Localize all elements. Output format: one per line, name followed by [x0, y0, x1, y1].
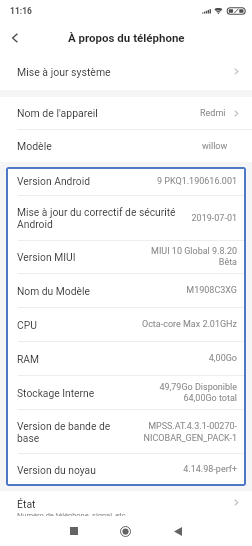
staticText: CPU [17, 319, 141, 331]
staticText: Bêta [218, 257, 237, 268]
staticText: RAM [17, 353, 208, 365]
button[interactable]: Nom de l'appareil [0, 97, 252, 129]
staticText: Version Android [17, 175, 157, 187]
staticText: Octa-core Max 2.01GHz [141, 319, 237, 330]
staticText: M1908C3XG [186, 285, 237, 296]
staticText: Version de bande de base [17, 420, 131, 444]
button[interactable]: Modèle [0, 130, 252, 162]
staticText: À propos du téléphone [68, 31, 185, 44]
button[interactable]: RAM [6, 342, 246, 375]
button[interactable]: Back [160, 516, 196, 546]
staticText: 9 PKQ1.190616.001 [157, 176, 237, 187]
staticText: Version du noyau [17, 464, 183, 476]
button[interactable]: Home [107, 516, 143, 546]
button[interactable]: État [0, 498, 252, 516]
staticText: 4,00Go [208, 353, 237, 364]
button[interactable]: Mise à jour système [0, 53, 252, 90]
button[interactable]: Version Android [6, 167, 246, 195]
staticText: Redmi [200, 108, 226, 119]
staticText: Mise à jour du correctif de sécurité And… [17, 206, 185, 230]
staticText: 11:16 [10, 6, 32, 16]
button[interactable]: Nom du Modèle [6, 274, 246, 307]
button[interactable]: Version MIUI [6, 241, 246, 273]
button[interactable]: Mise à jour du correctif de sécurité And… [6, 196, 246, 240]
staticText: Mise à jour système [17, 66, 232, 78]
button[interactable]: Recent apps [56, 516, 92, 546]
button[interactable]: Back [0, 23, 30, 53]
staticText: 2019-07-01 [191, 213, 237, 224]
button[interactable]: CPU [6, 308, 246, 341]
staticText: Modèle [17, 140, 202, 152]
staticText: État [17, 498, 36, 510]
staticText: Version MIUI [17, 251, 151, 263]
staticText: Nom de l'appareil [17, 107, 200, 119]
staticText: 4.14.98-perf+ [183, 464, 237, 475]
staticText: 64,00Go total [183, 393, 237, 404]
staticText: Numéro de téléphone, signal, etc. [17, 511, 128, 516]
button[interactable]: Version de bande de base [6, 410, 246, 453]
staticText: MPSS.AT.4.3.1-00270-NICOBAR_GEN_PACK-1 [137, 421, 237, 443]
staticText: Stockage Interne [17, 387, 159, 399]
button[interactable]: Version du noyau [6, 454, 246, 485]
button[interactable]: Stockage Interne [6, 376, 246, 409]
staticText: 49,79Go Disponible [159, 382, 237, 393]
staticText: MIUI 10 Global 9.8.20 [151, 246, 237, 257]
staticText: Nom du Modèle [17, 285, 186, 297]
staticText: willow [202, 141, 228, 152]
